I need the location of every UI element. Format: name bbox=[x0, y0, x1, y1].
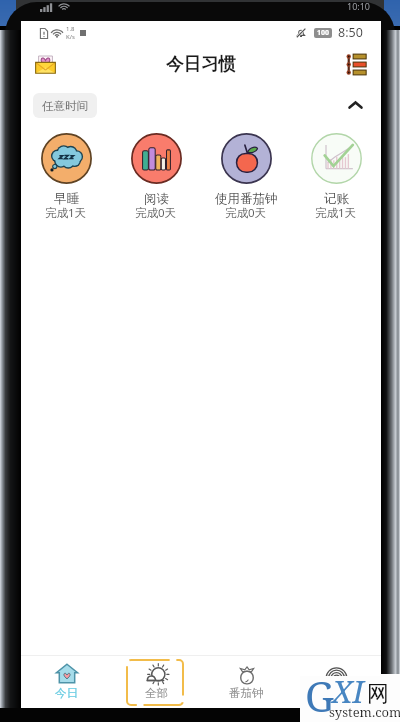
staticText: 统计 bbox=[325, 686, 348, 700]
staticText: 早睡 bbox=[54, 191, 79, 207]
staticText: 完成0天 bbox=[225, 205, 267, 221]
staticText: G bbox=[305, 668, 335, 722]
staticText: 任意时间 bbox=[42, 99, 88, 113]
button[interactable]: 早睡 bbox=[21, 133, 111, 223]
staticText: 完成0天 bbox=[135, 205, 177, 221]
staticText: 番茄钟 bbox=[229, 686, 264, 700]
button[interactable]: 阅读 bbox=[111, 133, 201, 223]
staticText: 阅读 bbox=[144, 191, 169, 207]
staticText: 完成1天 bbox=[315, 205, 357, 221]
staticText: 记账 bbox=[324, 191, 349, 207]
button[interactable]: 使用番茄钟 bbox=[201, 133, 291, 223]
staticText: 网 bbox=[367, 680, 389, 708]
staticText: 完成1天 bbox=[45, 205, 87, 221]
staticText: system.com bbox=[329, 703, 400, 721]
button[interactable]: 统计 bbox=[291, 656, 381, 708]
button[interactable]: Collapse section bbox=[343, 93, 367, 117]
staticText: 1.8 bbox=[66, 25, 75, 33]
staticText: 今日 bbox=[55, 686, 78, 700]
staticText: 全部 bbox=[145, 686, 168, 700]
staticText: K/s bbox=[66, 33, 75, 41]
staticText: 100 bbox=[317, 28, 330, 38]
button[interactable]: 任意时间 bbox=[33, 93, 97, 118]
button[interactable]: 今日 bbox=[21, 656, 111, 708]
button[interactable]: 记账 bbox=[291, 133, 381, 223]
staticText: XI bbox=[332, 670, 364, 712]
button[interactable]: Timeline view bbox=[343, 51, 369, 77]
staticText: 8:50 bbox=[338, 24, 363, 41]
button[interactable]: 全部 bbox=[111, 656, 201, 708]
staticText: 10:10 bbox=[347, 0, 371, 12]
staticText: 今日习惯 bbox=[166, 53, 236, 75]
staticText: 使用番茄钟 bbox=[215, 191, 278, 207]
button[interactable]: Messages bbox=[32, 51, 58, 77]
button[interactable]: 番茄钟 bbox=[201, 656, 291, 708]
